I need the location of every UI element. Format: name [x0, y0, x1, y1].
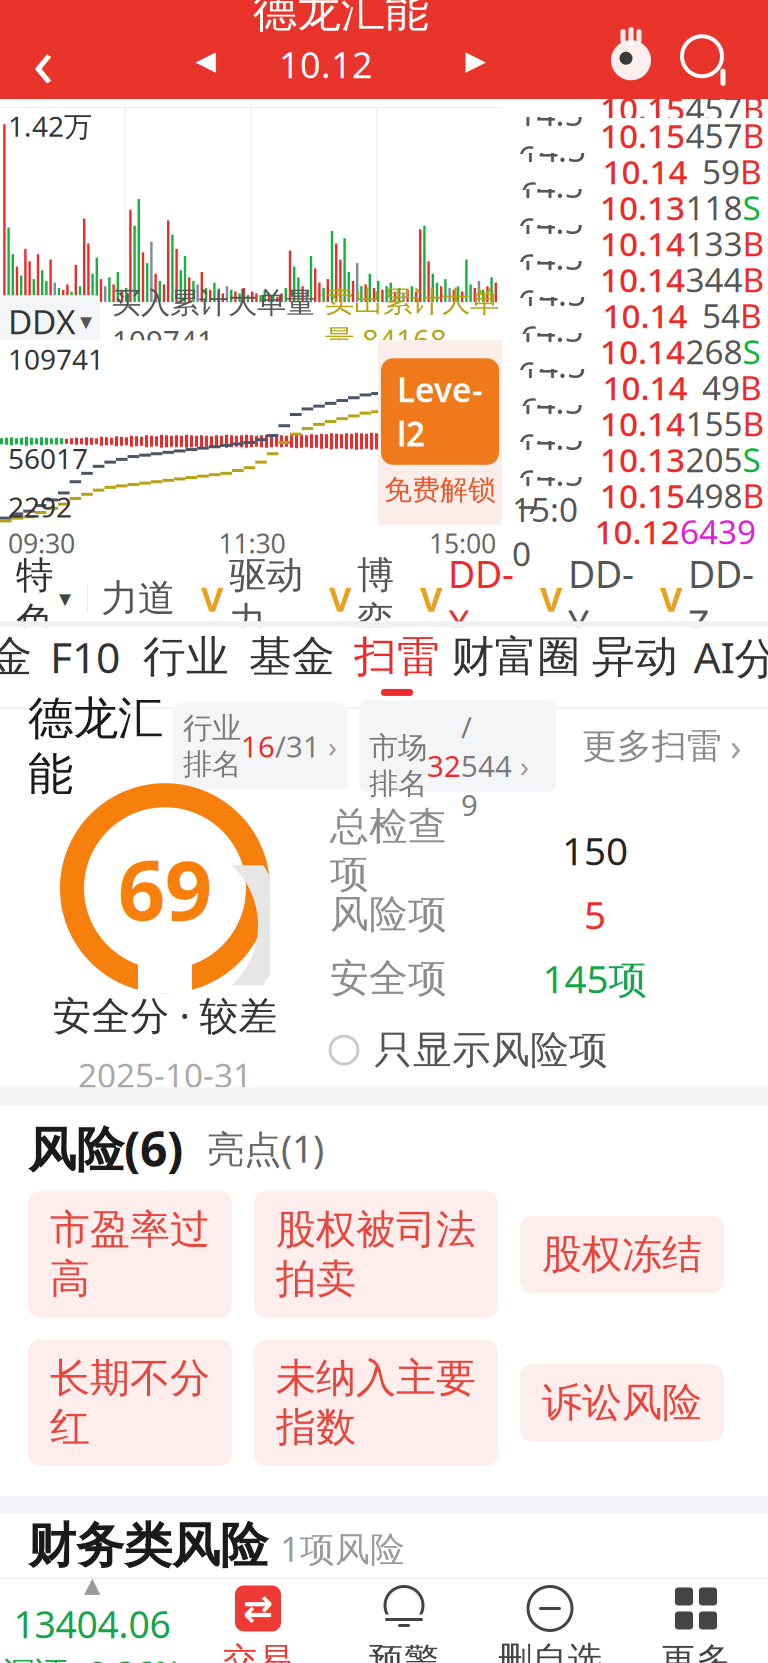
staticText: 14:56 — [517, 379, 583, 467]
staticText: 150 — [562, 825, 628, 876]
button[interactable]: V — [407, 569, 527, 627]
button[interactable]: 只显示风险项 — [330, 1026, 608, 1074]
button[interactable]: 行业 — [133, 627, 239, 699]
staticText: 10.13 — [600, 185, 685, 229]
staticText: 10.14 — [602, 365, 687, 409]
button[interactable]: 金 — [0, 627, 37, 699]
staticText: V — [660, 575, 683, 621]
staticText: 10.14 — [602, 149, 687, 193]
button[interactable]: V — [316, 569, 407, 627]
staticText: 10.14 — [602, 293, 687, 337]
button[interactable]: 诉讼风险 — [520, 1364, 724, 1441]
staticText: S — [742, 185, 760, 229]
button[interactable]: 股权冻结 — [520, 1216, 724, 1293]
staticText: ▲ — [84, 1573, 100, 1597]
button[interactable]: 市场排名 — [359, 700, 556, 792]
staticText: 14:56 — [517, 307, 583, 395]
staticText: 1项风险 — [280, 1525, 405, 1571]
button[interactable]: F10 — [37, 627, 133, 699]
button[interactable]: 删自选 — [477, 1581, 623, 1663]
staticText: 2292 — [8, 488, 72, 525]
staticText: 买入累计大单量 109741 — [112, 282, 315, 360]
button[interactable]: 行业排名 — [173, 703, 347, 789]
staticText: 14:56 — [517, 415, 583, 503]
staticText: 10.15 — [600, 86, 685, 130]
staticText: 风险(6) — [28, 1116, 183, 1180]
staticText: 亮点(1) — [207, 1123, 324, 1173]
staticText: 5 — [584, 889, 606, 940]
staticText: 博弈 — [357, 552, 394, 644]
button[interactable]: ⇄ — [185, 1581, 331, 1663]
staticText: 10.14 — [600, 401, 685, 445]
staticText: 免费解锁 — [384, 473, 496, 507]
staticText: 14:56 — [517, 64, 583, 152]
staticText: 109741 — [8, 340, 104, 377]
staticText: 14:56 — [520, 271, 586, 359]
staticText: ‹ — [32, 14, 53, 106]
button[interactable]: 异动 — [583, 627, 687, 699]
staticText: B — [742, 113, 764, 157]
staticText: 14:56 — [517, 163, 583, 251]
staticText: 股权被司法拍卖 — [276, 1205, 476, 1303]
staticText: › — [320, 727, 337, 766]
staticText: 10.15 — [600, 113, 685, 157]
staticText: 54 — [702, 293, 740, 337]
staticText: 财务类风险 — [28, 1516, 268, 1575]
staticText: › — [730, 721, 742, 771]
staticText: 56017 — [8, 439, 88, 477]
staticText: 133 — [685, 221, 742, 265]
button[interactable]: 未纳入主要指数 — [254, 1339, 498, 1466]
staticText: DDZ — [688, 549, 754, 648]
staticText: 总检查项 — [330, 803, 447, 898]
staticText: 安全分 · 较差 — [52, 989, 277, 1040]
button[interactable]: 特色 — [0, 569, 87, 627]
button[interactable]: V — [188, 569, 316, 627]
button[interactable]: 亮点(1) — [207, 1123, 324, 1173]
staticText: 32 — [427, 746, 461, 785]
staticText: 扫雷 — [354, 630, 440, 683]
staticText: 金 — [0, 630, 32, 683]
button[interactable]: 搜索 — [666, 22, 746, 98]
button[interactable]: 智能助手 — [596, 22, 666, 98]
staticText: 安全项 — [330, 955, 447, 1002]
staticText: Level2 — [397, 367, 483, 456]
staticText: 市场排名 — [369, 730, 427, 802]
staticText: 155 — [685, 401, 742, 445]
button[interactable]: 下一只股票 — [456, 30, 496, 90]
button[interactable]: 长期不分红 — [28, 1339, 232, 1466]
button[interactable]: 基金 — [239, 627, 345, 699]
button[interactable]: 财富圈 — [449, 627, 583, 699]
button[interactable]: V — [647, 569, 767, 627]
button[interactable]: 更多扫雷 — [582, 721, 768, 771]
staticText: B — [742, 401, 764, 445]
staticText: 10.14 — [600, 221, 685, 265]
button[interactable]: 市盈率过高 — [28, 1191, 232, 1317]
button[interactable]: DDX — [0, 295, 100, 347]
button[interactable]: 上一只股票 — [186, 30, 226, 90]
button[interactable]: 更多 — [623, 1581, 768, 1663]
button[interactable]: V — [527, 569, 647, 627]
staticText: 09:30 — [8, 525, 75, 561]
staticText: 14:56 — [520, 343, 586, 431]
button[interactable]: 预警 — [331, 1581, 477, 1663]
button[interactable]: 返回 — [0, 22, 86, 98]
button[interactable]: 力道 — [88, 569, 188, 627]
staticText: 股权冻结 — [542, 1230, 702, 1279]
button[interactable]: 股权被司法拍卖 — [254, 1191, 498, 1317]
staticText: DDX — [448, 549, 514, 648]
staticText: B — [740, 293, 762, 337]
staticText: B — [742, 257, 764, 301]
staticText: 457 — [685, 113, 742, 157]
button[interactable]: 风险(6) — [28, 1116, 183, 1180]
staticText: 59 — [702, 149, 740, 193]
staticText: B — [742, 86, 764, 130]
staticText: 未纳入主要指数 — [276, 1353, 476, 1452]
staticText: 交易 — [223, 1639, 293, 1663]
button[interactable]: AI分析 — [687, 627, 768, 699]
button[interactable]: 扫雷 — [345, 627, 449, 699]
staticText: 市盈率过高 — [50, 1205, 210, 1303]
staticText: B — [740, 149, 762, 193]
button[interactable]: ▲ — [0, 1581, 185, 1663]
staticText: 205 — [685, 437, 742, 481]
staticText: 14:56 — [517, 235, 583, 323]
